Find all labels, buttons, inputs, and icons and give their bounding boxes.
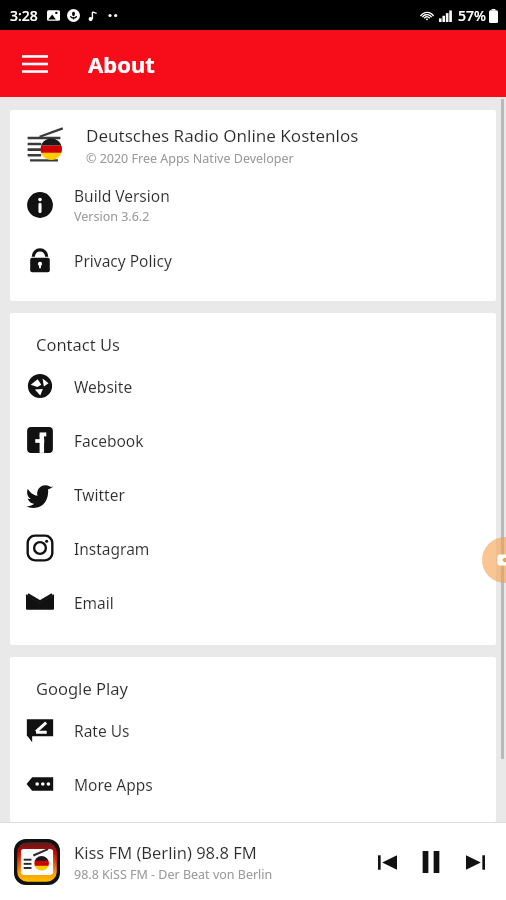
- staticText: Contact Us: [36, 333, 120, 355]
- staticText: Twitter: [74, 484, 125, 505]
- button[interactable]: Pause: [412, 843, 450, 881]
- staticText: Google Play: [36, 677, 128, 699]
- button[interactable]: Instagram: [10, 521, 496, 575]
- staticText: Kiss FM (Berlin) 98.8 FM: [74, 841, 257, 863]
- button[interactable]: Kiss FM (Berlin) 98.8 FM: [0, 823, 506, 900]
- staticText: About: [88, 49, 155, 79]
- staticText: 98.8 KiSS FM - Der Beat von Berlin: [74, 866, 273, 883]
- button[interactable]: Email: [10, 575, 496, 629]
- staticText: Facebook: [74, 430, 144, 451]
- button[interactable]: Privacy Policy: [10, 233, 496, 287]
- button[interactable]: More Apps: [10, 757, 496, 811]
- button[interactable]: Previous station: [370, 845, 404, 879]
- button[interactable]: Website: [10, 359, 496, 413]
- button[interactable]: Facebook: [10, 413, 496, 467]
- staticText: Rate Us: [74, 720, 130, 741]
- staticText: 57%: [458, 6, 486, 25]
- button[interactable]: Build Version: [10, 177, 496, 233]
- button[interactable]: Twitter: [10, 467, 496, 521]
- button[interactable]: Open navigation menu: [12, 41, 58, 87]
- staticText: Version 3.6.2: [74, 208, 150, 225]
- staticText: Deutsches Radio Online Kostenlos: [86, 124, 359, 147]
- staticText: © 2020 Free Apps Native Developer: [86, 150, 294, 167]
- staticText: Website: [74, 376, 133, 397]
- staticText: 3:28: [10, 6, 38, 25]
- staticText: Build Version: [74, 185, 170, 206]
- button[interactable]: Next station: [458, 845, 492, 879]
- staticText: Email: [74, 592, 114, 613]
- staticText: More Apps: [74, 774, 153, 795]
- button[interactable]: Open player: [482, 537, 506, 583]
- button[interactable]: Deutsches Radio Online Kostenlos: [10, 110, 496, 177]
- staticText: Privacy Policy: [74, 250, 172, 271]
- button[interactable]: Rate Us: [10, 703, 496, 757]
- staticText: Instagram: [74, 538, 150, 559]
